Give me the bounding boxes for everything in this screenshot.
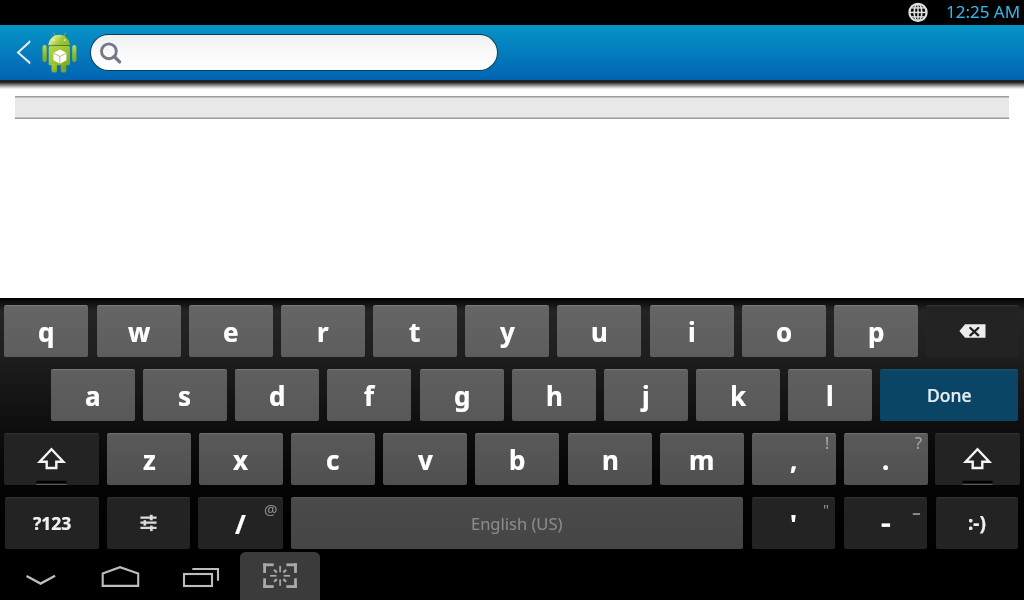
button[interactable]: ?123 (5, 497, 99, 549)
staticText: f (364, 378, 375, 413)
button[interactable] (15, 96, 1009, 119)
staticText: q (38, 314, 55, 349)
staticText: l (826, 378, 834, 413)
button[interactable]: e (189, 305, 273, 357)
staticText: j (642, 378, 650, 413)
button[interactable]: a (51, 369, 135, 421)
button[interactable]: x (199, 433, 283, 485)
staticText: p (868, 314, 885, 349)
staticText: @ (264, 499, 278, 519)
button[interactable]: z (107, 433, 191, 485)
staticText: s (178, 378, 192, 413)
staticText: , (790, 442, 798, 477)
staticText: z (143, 442, 156, 477)
button[interactable]: g (420, 369, 504, 421)
button[interactable]: s (143, 369, 227, 421)
staticText: m (689, 442, 715, 477)
staticText: ! (825, 433, 830, 454)
staticText: x (233, 442, 249, 477)
staticText: English (US) (471, 512, 563, 534)
button[interactable]: o (742, 305, 826, 357)
staticText: d (269, 378, 286, 413)
button[interactable]: Recent apps (172, 558, 230, 596)
button[interactable]: ! (752, 433, 836, 485)
button[interactable]: v (383, 433, 467, 485)
button[interactable]: Switch input method (240, 552, 320, 600)
button[interactable]: c (291, 433, 375, 485)
staticText: t (409, 314, 421, 349)
button[interactable]: ? (844, 433, 928, 485)
staticText: ' (790, 506, 797, 541)
button[interactable]: " (752, 497, 835, 549)
button[interactable]: Home (91, 558, 149, 596)
staticText: h (546, 378, 563, 413)
staticText: i (688, 314, 696, 349)
staticText: Done (927, 383, 972, 407)
staticText: :-) (968, 510, 986, 536)
staticText: " (823, 499, 830, 519)
staticText: g (454, 378, 471, 413)
button[interactable]: h (512, 369, 596, 421)
staticText: a (85, 378, 101, 413)
button[interactable]: Shift (935, 433, 1020, 485)
button[interactable]: q (4, 305, 88, 357)
button[interactable]: w (97, 305, 181, 357)
button[interactable]: k (696, 369, 780, 421)
button[interactable]: Minus (844, 497, 927, 549)
button[interactable]: r (281, 305, 365, 357)
staticText: b (509, 442, 526, 477)
staticText: r (317, 314, 329, 349)
staticText: ?123 (33, 511, 72, 535)
staticText: u (591, 314, 608, 349)
button[interactable]: Keyboard settings (107, 497, 190, 549)
button[interactable]: :-) (936, 497, 1018, 549)
button[interactable]: p (834, 305, 918, 357)
button[interactable]: Backspace (926, 305, 1019, 357)
button[interactable]: d (235, 369, 319, 421)
button[interactable]: f (327, 369, 411, 421)
button[interactable]: n (568, 433, 652, 485)
button[interactable]: i (650, 305, 734, 357)
button[interactable]: u (557, 305, 641, 357)
button[interactable]: Hide keyboard (12, 558, 70, 596)
button[interactable]: @ (198, 497, 283, 549)
button[interactable] (91, 35, 497, 70)
staticText: o (776, 314, 793, 349)
staticText: e (223, 314, 239, 349)
button[interactable]: Back (8, 32, 40, 74)
staticText: . (882, 442, 890, 477)
staticText: ? (915, 433, 922, 454)
staticText: k (730, 378, 747, 413)
button[interactable]: l (788, 369, 872, 421)
staticText: v (418, 442, 433, 477)
button[interactable]: m (660, 433, 744, 485)
staticText: y (500, 314, 515, 349)
staticText: / (235, 506, 246, 541)
button[interactable]: b (475, 433, 559, 485)
staticText: c (326, 442, 340, 477)
button[interactable]: Done (880, 369, 1018, 421)
button[interactable]: t (373, 305, 457, 357)
button[interactable]: y (465, 305, 549, 357)
button[interactable]: Space (291, 497, 743, 549)
staticText: n (602, 442, 619, 477)
button[interactable]: Shift (4, 433, 99, 485)
staticText: 12:25 AM (946, 0, 1021, 23)
staticText: w (128, 314, 151, 349)
button[interactable]: j (604, 369, 688, 421)
